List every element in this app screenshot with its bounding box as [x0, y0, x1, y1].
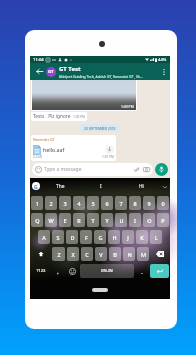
staticText: 11:04 — [33, 57, 44, 63]
button[interactable]: Back — [35, 67, 44, 76]
button[interactable]: J — [122, 230, 134, 244]
button[interactable]: 8 — [129, 196, 141, 210]
staticText: U — [119, 217, 124, 224]
button[interactable]: P — [157, 213, 169, 227]
button[interactable]: 6 — [101, 196, 113, 210]
staticText: M — [141, 251, 146, 258]
button[interactable]: The — [40, 178, 81, 194]
staticText: ?123 — [36, 268, 46, 274]
button[interactable]: 2 — [45, 196, 57, 210]
staticText: T — [91, 217, 95, 224]
staticText: hello.aaf — [43, 146, 65, 153]
staticText: Q — [35, 217, 40, 224]
button[interactable]: H — [108, 230, 120, 244]
staticText: The — [56, 183, 65, 190]
staticText: 8 — [133, 200, 137, 207]
button[interactable]: X — [67, 247, 79, 261]
button[interactable]: W — [45, 213, 57, 227]
staticText: O — [147, 217, 152, 224]
button[interactable]: M — [137, 247, 149, 261]
button[interactable]: . — [136, 264, 148, 278]
button[interactable]: 1 — [31, 196, 43, 210]
button[interactable]: Shift — [31, 247, 50, 261]
button[interactable]: , — [52, 264, 64, 278]
button[interactable]: Hi — [121, 178, 161, 194]
button[interactable]: O — [143, 213, 155, 227]
staticText: K — [140, 234, 144, 241]
staticText: Y — [105, 217, 109, 224]
button[interactable]: Expand suggestions — [161, 183, 168, 190]
button[interactable]: Z — [52, 247, 65, 261]
staticText: GT — [48, 69, 54, 75]
button[interactable]: Backspace — [151, 247, 169, 261]
button[interactable]: Q — [31, 213, 43, 227]
staticText: G — [34, 183, 38, 190]
staticText: 2.2 kB — [33, 155, 43, 159]
staticText: 1:00 PM — [121, 104, 134, 109]
button[interactable]: 4 — [73, 196, 85, 210]
staticText: 44% — [158, 57, 167, 63]
staticText: 1:01 PM — [102, 155, 114, 159]
button[interactable]: Home — [92, 288, 108, 292]
button[interactable]: L — [150, 230, 162, 244]
button[interactable]: 3 — [59, 196, 71, 210]
staticText: I — [100, 183, 102, 190]
staticText: B — [113, 251, 117, 258]
button[interactable]: Emoji — [66, 264, 78, 278]
button[interactable]: T — [87, 213, 99, 227]
button[interactable]: Y — [101, 213, 113, 227]
button[interactable]: D — [66, 230, 78, 244]
staticText: Hi — [139, 183, 144, 190]
button[interactable]: R — [73, 213, 85, 227]
staticText: N — [127, 251, 132, 258]
button[interactable]: E — [59, 213, 71, 227]
button[interactable]: Google — [32, 182, 40, 190]
staticText: GT Test — [59, 65, 81, 73]
button[interactable]: Enter — [150, 264, 169, 278]
button[interactable]: G — [94, 230, 106, 244]
staticText: G — [98, 234, 103, 241]
button[interactable]: F — [80, 230, 92, 244]
button[interactable]: Tests . Plz ignore — [31, 112, 87, 121]
staticText: A — [42, 234, 46, 241]
staticText: 4 — [77, 200, 81, 207]
staticText: Z — [57, 251, 61, 258]
staticText: . — [141, 268, 143, 275]
button[interactable]: B — [109, 247, 121, 261]
button[interactable]: N — [123, 247, 135, 261]
button[interactable]: Download — [105, 145, 114, 154]
staticText: 5 — [91, 200, 95, 207]
staticText: Type a message — [44, 166, 82, 173]
button[interactable]: Narender GT — [31, 135, 116, 161]
button[interactable]: U — [115, 213, 127, 227]
staticText: E — [63, 217, 67, 224]
staticText: D — [70, 234, 75, 241]
button[interactable]: V — [95, 247, 107, 261]
staticText: , — [57, 268, 59, 275]
staticText: 20 SEPTEMBER 2018 — [84, 126, 116, 130]
staticText: H — [112, 234, 117, 241]
button[interactable]: Record voice message — [155, 163, 168, 176]
button[interactable]: More options — [159, 67, 168, 76]
button[interactable]: C — [81, 247, 93, 261]
button[interactable]: 9 — [143, 196, 155, 210]
button[interactable]: A — [38, 230, 50, 244]
button[interactable]: 7 — [115, 196, 127, 210]
staticText: X — [71, 251, 75, 258]
button[interactable]: EN-IN — [80, 264, 134, 278]
button[interactable]: ?123 — [31, 264, 50, 278]
button[interactable]: 0 — [157, 196, 169, 210]
button[interactable]: Type a message — [32, 163, 153, 176]
staticText: EN-IN — [101, 268, 113, 274]
button[interactable]: Group photo — [46, 67, 56, 77]
button[interactable]: 5 — [87, 196, 99, 210]
staticText: 0 — [161, 200, 165, 207]
staticText: F — [85, 234, 88, 241]
button[interactable]: S — [52, 230, 64, 244]
button[interactable]: I — [129, 213, 141, 227]
button[interactable]: I — [81, 178, 121, 194]
staticText: P — [161, 217, 165, 224]
button[interactable]: 1:00 PM — [32, 80, 136, 110]
button[interactable]: K — [136, 230, 148, 244]
staticText: J — [127, 234, 129, 241]
